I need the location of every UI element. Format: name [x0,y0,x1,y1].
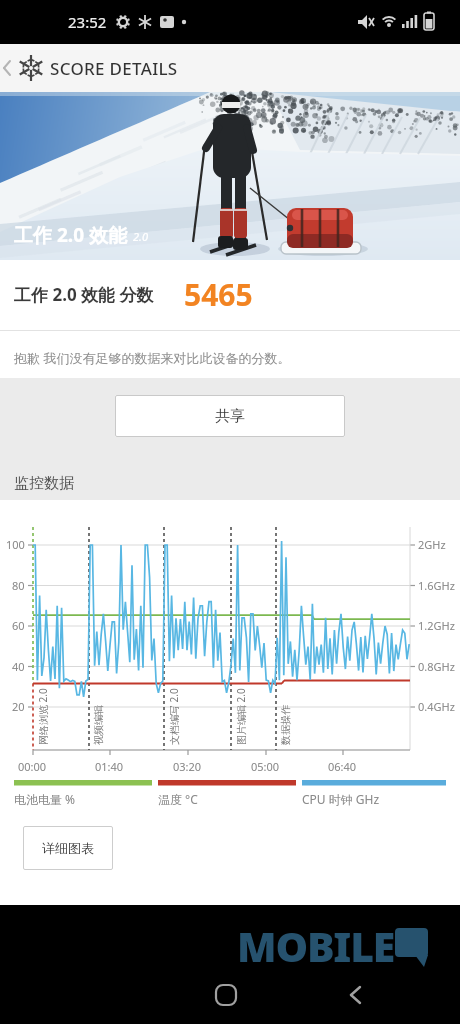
staticText: 数据操作 [279,705,292,745]
staticText: 监控数据 [14,474,74,493]
staticText: 20 [12,699,25,714]
staticText: 100 [6,537,25,552]
staticText: 1.2GHz [418,618,455,633]
staticText: CPU 时钟 GHz [302,791,380,807]
staticText: 01:40 [95,759,124,774]
staticText: 网络浏览 2.0 [36,688,50,745]
staticText: 温度 °C [158,791,198,807]
staticText: 00:00 [18,759,47,774]
staticText: 06:40 [328,759,357,774]
staticText: 详细图表 [42,840,94,856]
staticText: 80 [12,578,25,593]
staticText: 1.6GHz [418,578,455,593]
staticText: 40 [12,659,25,674]
button[interactable] [342,981,370,1009]
button[interactable] [0,44,16,92]
staticText: 05:00 [251,759,280,774]
staticText: 抱歉 我们没有足够的数据来对比此设备的分数。 [14,349,291,367]
staticText: 0.4GHz [418,699,455,714]
staticText: 0.8GHz [418,659,455,674]
staticText: 文档编写 2.0 [167,688,181,745]
button[interactable]: 详细图表 [23,826,113,870]
staticText: 23:52 [68,12,107,32]
button[interactable] [212,981,240,1009]
staticText: 图片编辑 2.0 [234,688,248,745]
staticText: 2GHz [418,537,446,552]
staticText: 共享 [215,407,245,426]
button[interactable]: 共享 [115,395,345,437]
staticText: 60 [12,618,25,633]
staticText: MOBILE [237,918,395,974]
staticText: 电池电量 % [14,791,76,807]
staticText: 2.0 [133,229,148,244]
staticText: 工作 2.0 效能 分数 [14,283,154,306]
staticText: 工作 2.0 效能 [14,222,127,248]
staticText: 03:20 [173,759,202,774]
staticText: 视频编辑 [92,705,105,745]
staticText: 5465 [184,274,253,315]
staticText: SCORE DETAILS [50,57,178,80]
